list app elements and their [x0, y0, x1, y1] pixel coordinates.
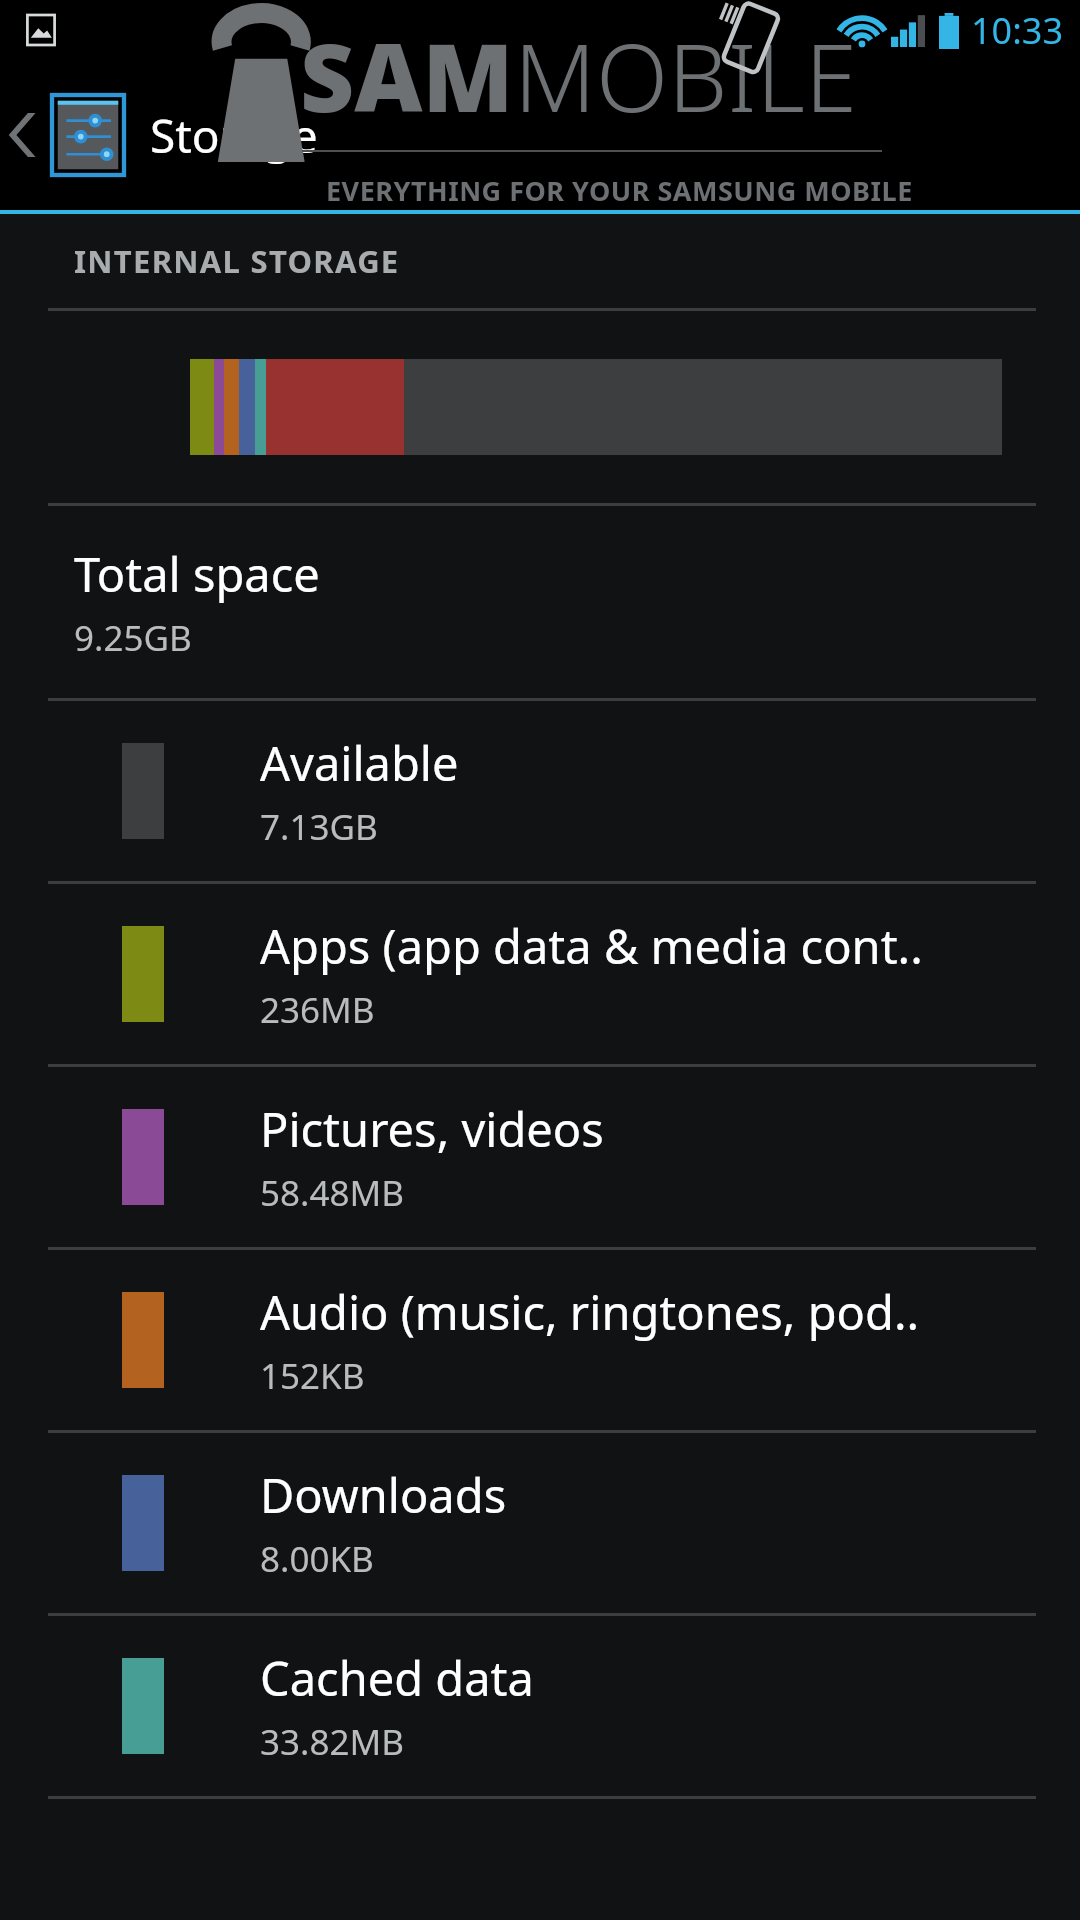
staticText: Audio (music, ringtones, pod..: [260, 1280, 920, 1344]
staticText: 236MB: [260, 986, 375, 1034]
button[interactable]: Total space: [0, 506, 1080, 698]
button[interactable]: Downloads: [0, 1433, 1080, 1613]
button[interactable]: Apps (app data & media cont..: [0, 884, 1080, 1064]
button[interactable]: Navigate up from Storage: [0, 60, 1080, 210]
staticText: 9.25GB: [74, 614, 192, 662]
button[interactable]: Pictures, videos: [0, 1067, 1080, 1247]
staticText: 10:33: [971, 6, 1064, 55]
staticText: Pictures, videos: [260, 1097, 604, 1161]
staticText: Downloads: [260, 1463, 507, 1527]
staticText: EVERYTHING FOR YOUR SAMSUNG MOBILE: [326, 172, 913, 209]
button[interactable]: Cached data: [0, 1616, 1080, 1796]
staticText: 7.13GB: [260, 803, 378, 851]
staticText: Total space: [74, 542, 320, 606]
staticText: SAM: [300, 12, 514, 140]
staticText: INTERNAL STORAGE: [74, 240, 400, 282]
staticText: Apps (app data & media cont..: [260, 914, 923, 978]
button[interactable]: Audio (music, ringtones, pod..: [0, 1250, 1080, 1430]
staticText: 33.82MB: [260, 1718, 404, 1766]
staticText: Cached data: [260, 1646, 534, 1710]
staticText: 8.00KB: [260, 1535, 374, 1583]
staticText: MOBILE: [514, 12, 858, 140]
staticText: Storage: [150, 104, 318, 167]
staticText: 152KB: [260, 1352, 365, 1400]
button[interactable]: Available: [0, 701, 1080, 881]
staticText: 58.48MB: [260, 1169, 404, 1217]
staticText: Available: [260, 731, 459, 795]
